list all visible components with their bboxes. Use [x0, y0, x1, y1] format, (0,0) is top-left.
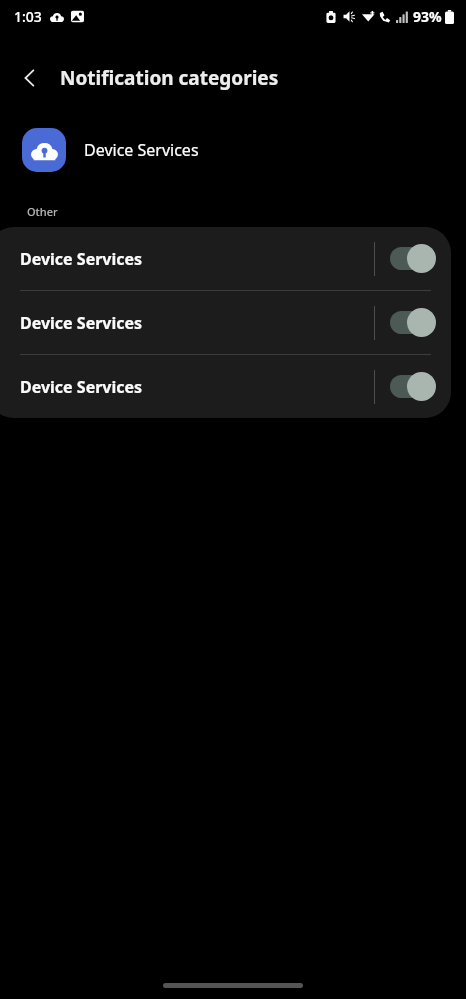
staticText: Device Services	[84, 139, 199, 161]
button[interactable]: Back	[8, 56, 52, 100]
button[interactable]: Device Services	[0, 124, 466, 176]
button[interactable]: Device Services	[0, 355, 451, 418]
staticText: 1:03	[14, 7, 42, 26]
button[interactable]: Device Services	[0, 227, 451, 290]
button[interactable]: Device Services notifications on	[390, 372, 436, 401]
staticText: Device Services	[20, 312, 374, 334]
button[interactable]: Device Services notifications on	[390, 244, 436, 273]
staticText: 93%	[413, 7, 442, 26]
staticText: Device Services	[20, 248, 374, 270]
staticText: Other	[27, 204, 58, 219]
staticText: Notification categories	[60, 65, 279, 91]
button[interactable]: Device Services	[0, 291, 451, 354]
staticText: Device Services	[20, 376, 374, 398]
button[interactable]: Device Services notifications on	[390, 308, 436, 337]
